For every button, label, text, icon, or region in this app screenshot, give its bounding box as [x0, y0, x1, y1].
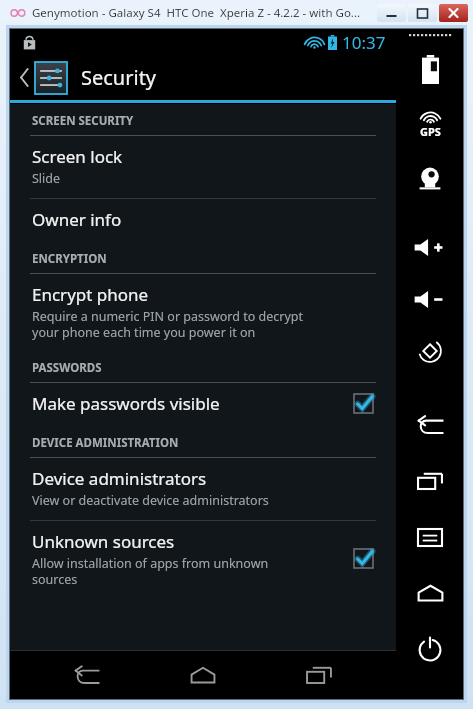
button[interactable]: Power	[399, 632, 461, 666]
button[interactable]: Menu	[399, 520, 461, 554]
staticText: Encrypt phone	[32, 283, 149, 306]
staticText: Require a numeric PIN or password to dec…	[32, 308, 304, 340]
staticText: Make passwords visible	[32, 392, 220, 415]
staticText: Unknown sources	[32, 530, 175, 553]
button[interactable]: Screen lock	[10, 136, 396, 198]
button[interactable]: Recent apps	[399, 464, 461, 498]
button[interactable]: Recent apps	[280, 651, 358, 699]
button[interactable]: Home	[399, 576, 461, 610]
button[interactable]: Close	[439, 4, 468, 22]
staticText: Device administrators	[32, 467, 207, 490]
staticText: DEVICE ADMINISTRATION	[32, 435, 179, 451]
button[interactable]: Navigate up	[10, 55, 75, 100]
staticText: Slide	[32, 170, 61, 187]
button[interactable]: Home	[164, 651, 242, 699]
button[interactable]: Back	[399, 408, 461, 442]
staticText: SCREEN SECURITY	[32, 113, 134, 129]
staticText: Screen lock	[32, 145, 123, 168]
button[interactable]: Toggle	[353, 548, 374, 569]
button[interactable]: Make passwords visible	[10, 383, 396, 426]
button[interactable]: Volume down	[399, 282, 461, 316]
button[interactable]: Camera	[399, 162, 461, 196]
button[interactable]: Maximize	[408, 4, 437, 22]
button[interactable]: Owner info	[10, 199, 396, 242]
staticText: ENCRYPTION	[32, 251, 107, 267]
button[interactable]: Back	[48, 651, 126, 699]
button[interactable]: GPS	[399, 108, 461, 142]
staticText: 10:37	[342, 31, 386, 54]
staticText: Genymotion - Galaxy S4 HTC One Xperia Z …	[32, 5, 361, 21]
button[interactable]: Minimize	[377, 4, 406, 22]
staticText: GPS	[420, 124, 441, 139]
button[interactable]: Encrypt phone	[10, 274, 396, 351]
staticText: PASSWORDS	[32, 360, 102, 376]
staticText: Allow installation of apps from unknown …	[32, 555, 269, 587]
button[interactable]: Unknown sources	[10, 521, 396, 598]
staticText: Security	[81, 64, 157, 91]
button[interactable]: Rotate	[399, 334, 461, 368]
button[interactable]: Volume up	[399, 230, 461, 264]
staticText: Owner info	[32, 208, 122, 231]
button[interactable]: Battery	[399, 52, 461, 86]
button[interactable]: Toggle	[353, 393, 374, 414]
staticText: View or deactivate device administrators	[32, 492, 269, 509]
button[interactable]: Device administrators	[10, 458, 396, 520]
